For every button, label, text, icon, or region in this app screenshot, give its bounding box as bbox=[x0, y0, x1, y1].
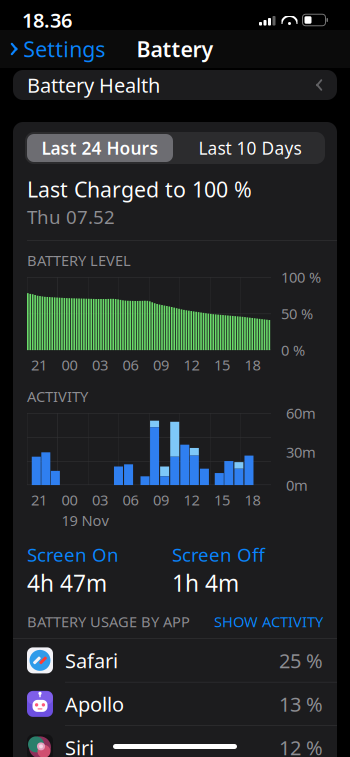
staticText: 06 bbox=[122, 490, 138, 510]
staticText: Siri bbox=[65, 734, 94, 757]
staticText: 21 bbox=[31, 490, 47, 510]
button[interactable]: Battery Health bbox=[13, 70, 337, 100]
staticText: 0 % bbox=[281, 340, 305, 360]
staticText: Apollo bbox=[65, 691, 124, 717]
staticText: 50 % bbox=[281, 304, 313, 323]
staticText: 12 % bbox=[279, 734, 323, 757]
staticText: 1h 4m bbox=[172, 568, 239, 598]
staticText: 30m bbox=[286, 442, 316, 462]
staticText: Last 24 Hours bbox=[41, 136, 158, 159]
staticText: Battery bbox=[136, 35, 213, 63]
staticText: 12 bbox=[183, 490, 199, 510]
button[interactable]: Last 10 Days bbox=[175, 132, 325, 164]
staticText: 15 bbox=[214, 490, 230, 510]
staticText: 06 bbox=[122, 355, 138, 375]
staticText: 18.36 bbox=[22, 7, 72, 33]
staticText: Screen On bbox=[27, 542, 119, 567]
button[interactable]: SHOW ACTIVITY bbox=[214, 612, 323, 631]
staticText: Settings bbox=[23, 35, 105, 63]
staticText: Last 10 Days bbox=[198, 136, 301, 159]
staticText: 13 % bbox=[279, 691, 323, 717]
staticText: 15 bbox=[214, 355, 230, 375]
staticText: 18 bbox=[244, 490, 260, 510]
staticText: 21 bbox=[31, 355, 47, 375]
button[interactable]: Safari bbox=[13, 639, 337, 682]
staticText: 00 bbox=[61, 490, 77, 510]
staticText: ACTIVITY bbox=[27, 387, 88, 406]
staticText: 09 bbox=[153, 355, 169, 375]
staticText: 4h 47m bbox=[27, 568, 107, 598]
staticText: Thu 07.52 bbox=[27, 204, 115, 229]
staticText: 00 bbox=[61, 355, 77, 375]
button[interactable]: Last 24 Hours bbox=[25, 132, 175, 164]
staticText: 60m bbox=[286, 403, 316, 423]
staticText: 0m bbox=[286, 475, 308, 495]
staticText: 25 % bbox=[279, 647, 323, 674]
staticText: 12 bbox=[183, 355, 199, 375]
staticText: 03 bbox=[92, 490, 108, 510]
button[interactable]: Apollo bbox=[13, 682, 337, 726]
button[interactable]: Settings bbox=[10, 29, 113, 69]
staticText: Battery Health bbox=[27, 72, 160, 98]
staticText: Last Charged to 100 % bbox=[27, 175, 252, 203]
staticText: 19 Nov bbox=[61, 510, 108, 530]
staticText: 100 % bbox=[281, 267, 321, 287]
staticText: BATTERY LEVEL bbox=[27, 251, 131, 270]
staticText: Safari bbox=[65, 647, 118, 674]
staticText: 18 bbox=[244, 355, 260, 375]
button[interactable]: Siri bbox=[13, 726, 337, 757]
staticText: 03 bbox=[92, 355, 108, 375]
staticText: BATTERY USAGE BY APP bbox=[27, 612, 190, 631]
staticText: 09 bbox=[153, 490, 169, 510]
staticText: SHOW ACTIVITY bbox=[214, 612, 323, 631]
staticText: Screen Off bbox=[172, 542, 265, 567]
